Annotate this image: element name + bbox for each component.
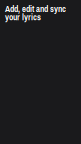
staticText: Add, edit and sync (5, 3, 66, 15)
staticText: your lyrics (5, 11, 41, 23)
